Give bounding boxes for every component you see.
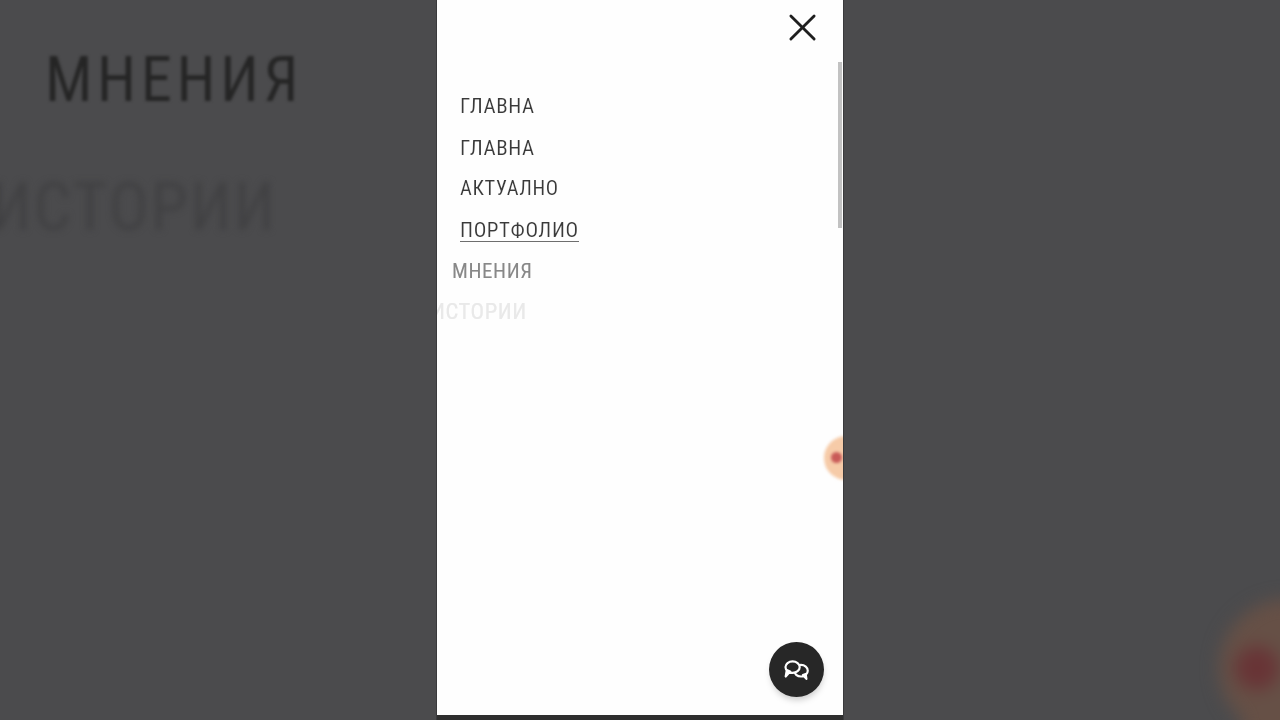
button[interactable]: Open chat (769, 642, 824, 697)
staticText: ПОРТФОЛИО (460, 218, 579, 243)
button[interactable]: ГЛАВНА (460, 136, 535, 161)
staticText: ИСТОРИИ (437, 298, 527, 324)
staticText: МНЕНИЯ (452, 259, 533, 284)
button[interactable]: Close menu (780, 5, 824, 49)
button[interactable]: ГЛАВНА (460, 94, 535, 119)
staticText: ГЛАВНА (460, 136, 535, 161)
button[interactable]: АКТУАЛНО (460, 176, 559, 200)
button[interactable]: ИСТОРИИ (437, 298, 527, 324)
staticText: МНЕНИЯ (45, 43, 304, 117)
staticText: ГЛАВНА (460, 94, 535, 119)
button[interactable]: МНЕНИЯ (452, 259, 533, 284)
staticText: АКТУАЛНО (460, 176, 559, 200)
button[interactable]: ПОРТФОЛИО (460, 218, 579, 243)
